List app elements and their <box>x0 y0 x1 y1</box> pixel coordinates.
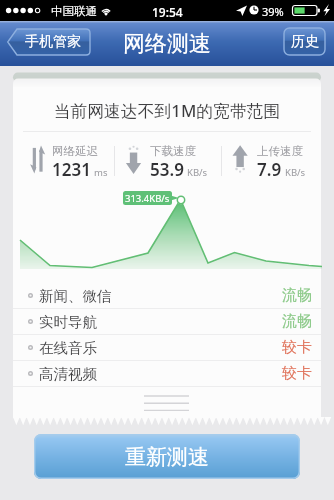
staticText: 313.4KB/s <box>125 192 170 205</box>
staticText: 流畅 <box>282 312 312 331</box>
staticText: 重新测速 <box>125 444 209 470</box>
staticText: ms <box>94 166 108 179</box>
staticText: 39% <box>262 4 284 19</box>
staticText: 较卡 <box>282 364 312 383</box>
staticText: 历史 <box>291 33 319 51</box>
staticText: 7.9 <box>257 158 282 181</box>
staticText: 高清视频 <box>39 365 97 383</box>
staticText: 实时导航 <box>39 313 97 331</box>
staticText: 在线音乐 <box>39 339 97 357</box>
staticText: 较卡 <box>282 338 312 357</box>
button[interactable]: 重新测速 <box>34 434 300 479</box>
button[interactable]: 历史 <box>283 27 326 56</box>
staticText: 上传速度 <box>257 144 303 158</box>
button[interactable]: 高清视频 <box>13 361 321 386</box>
staticText: 流畅 <box>282 286 312 305</box>
staticText: KB/s <box>187 166 208 179</box>
button[interactable]: 手机管家 <box>6 28 91 56</box>
staticText: 下载速度 <box>150 144 196 158</box>
staticText: KB/s <box>285 166 306 179</box>
staticText: 53.9 <box>150 158 184 181</box>
staticText: 19:54 <box>152 4 183 20</box>
staticText: 中国联通 <box>51 4 97 18</box>
button[interactable]: 实时导航 <box>13 309 321 334</box>
staticText: 1231 <box>52 158 91 181</box>
staticText: 新闻、微信 <box>39 287 112 305</box>
staticText: 手机管家 <box>25 33 81 51</box>
staticText: 网络延迟 <box>52 144 98 158</box>
staticText: 当前网速达不到1M的宽带范围 <box>13 99 321 122</box>
staticText: 网络测速 <box>123 30 211 58</box>
button[interactable]: 在线音乐 <box>13 335 321 360</box>
button[interactable]: 新闻、微信 <box>13 283 321 308</box>
